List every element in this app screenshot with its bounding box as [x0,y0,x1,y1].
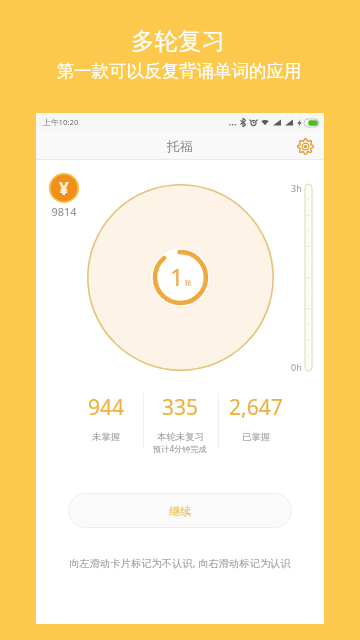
staticText: 第一款可以反复背诵单词的应用 [0,60,359,82]
button[interactable]: Coins [49,173,79,203]
button[interactable]: Settings [294,135,316,157]
staticText: 继续 [169,504,191,518]
staticText: 向左滑动卡片标记为不认识, 向右滑动标记为认识 [36,556,324,570]
staticText: 3h [291,182,302,194]
staticText: 本轮未复习 [157,431,204,443]
staticText: 预计4分钟完成 [153,443,207,454]
staticText: 944 [88,393,125,422]
staticText: 1 [170,261,184,293]
button[interactable]: 继续 [68,493,292,528]
staticText: 轮 [185,279,192,287]
staticText: ¥ [59,177,69,200]
staticText: 已掌握 [242,431,271,443]
staticText: 335 [162,393,199,422]
staticText: 上午10:20 [43,117,79,128]
staticText: 未掌握 [92,431,121,443]
staticText: 多轮复习 [0,26,358,56]
staticText: 2,647 [229,393,283,422]
staticText: 托福 [167,138,193,154]
staticText: 9814 [49,204,79,219]
staticText: 0h [291,361,302,373]
